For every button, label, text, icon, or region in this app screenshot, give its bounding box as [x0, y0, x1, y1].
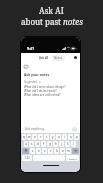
- button[interactable]: c: [42, 148, 47, 154]
- button[interactable]: m: [66, 148, 71, 154]
- staticText: Ask AI: [39, 5, 64, 16]
- staticText: Ask your notes: [24, 72, 50, 77]
- button[interactable]: d: [35, 141, 40, 147]
- staticText: m: [67, 149, 70, 153]
- button[interactable]: s: [29, 141, 34, 147]
- button[interactable]: p: [74, 134, 79, 140]
- button[interactable]: z: [30, 148, 35, 154]
- button[interactable]: t: [44, 134, 49, 140]
- staticText: x: [38, 149, 40, 153]
- button[interactable]: b: [54, 148, 59, 154]
- staticText: 9:41: [27, 46, 35, 51]
- button[interactable]: What did I write about design?: [24, 85, 77, 89]
- button[interactable]: w: [27, 134, 31, 140]
- button[interactable]: search: [66, 155, 79, 161]
- button[interactable]: Backspace: [72, 148, 79, 154]
- staticText: search: [69, 157, 77, 160]
- button[interactable]: o: [68, 134, 73, 140]
- staticText: n: [62, 149, 64, 153]
- staticText: y: [52, 135, 54, 139]
- button[interactable]: Shift: [22, 148, 29, 154]
- button[interactable]: f: [41, 141, 46, 147]
- button[interactable]: h: [53, 141, 58, 147]
- staticText: t: [46, 135, 48, 139]
- staticText: Ask anything...: [25, 127, 47, 131]
- staticText: f: [43, 142, 45, 146]
- staticText: i: [64, 135, 65, 139]
- button[interactable]: Profile: [73, 55, 78, 60]
- button[interactable]: j: [59, 141, 64, 147]
- button[interactable]: l: [71, 141, 76, 147]
- button[interactable]: Send: [72, 127, 77, 132]
- button[interactable]: v: [48, 148, 53, 154]
- button[interactable]: What ideas are unfinished?: [24, 93, 77, 97]
- button[interactable]: Ask anything...: [25, 127, 47, 131]
- button[interactable]: q: [22, 134, 26, 140]
- button[interactable]: What did I do last week?: [24, 89, 77, 93]
- staticText: w: [28, 135, 31, 139]
- button[interactable]: y: [50, 134, 55, 140]
- button[interactable]: Ask AI: [38, 55, 50, 61]
- staticText: l: [73, 142, 74, 146]
- button[interactable]: n: [60, 148, 65, 154]
- button[interactable]: i: [62, 134, 67, 140]
- staticText: Ask AI: [39, 56, 49, 60]
- button[interactable]: a: [24, 141, 28, 147]
- staticText: b: [56, 149, 58, 153]
- staticText: u: [58, 135, 60, 139]
- button[interactable]: Notes: [52, 55, 65, 61]
- staticText: Suggested: [24, 80, 37, 84]
- staticText: What did I write about design?: [24, 85, 66, 89]
- staticText: e: [34, 135, 36, 139]
- staticText: j: [61, 142, 62, 146]
- staticText: r: [40, 135, 42, 139]
- staticText: v: [50, 149, 52, 153]
- button[interactable]: g: [47, 141, 52, 147]
- staticText: Notes: [54, 56, 63, 60]
- button[interactable]: 123: [22, 155, 32, 161]
- staticText: s: [31, 142, 33, 146]
- staticText: q: [23, 135, 25, 139]
- staticText: What ideas are unfinished?: [24, 93, 61, 97]
- staticText: k: [67, 142, 69, 146]
- button[interactable]: r: [38, 134, 43, 140]
- staticText: g: [49, 142, 51, 146]
- staticText: What did I do last week?: [24, 89, 57, 93]
- staticText: 123: [25, 156, 30, 160]
- button[interactable]: e: [32, 134, 37, 140]
- staticText: z: [32, 149, 34, 153]
- staticText: c: [44, 149, 46, 153]
- staticText: h: [55, 142, 57, 146]
- staticText: d: [37, 142, 39, 146]
- button[interactable]: u: [56, 134, 61, 140]
- staticText: a: [25, 142, 27, 146]
- staticText: o: [70, 135, 72, 139]
- button[interactable]: x: [36, 148, 41, 154]
- button[interactable]: k: [65, 141, 70, 147]
- staticText: about past notes: [21, 16, 83, 27]
- staticText: p: [76, 135, 78, 139]
